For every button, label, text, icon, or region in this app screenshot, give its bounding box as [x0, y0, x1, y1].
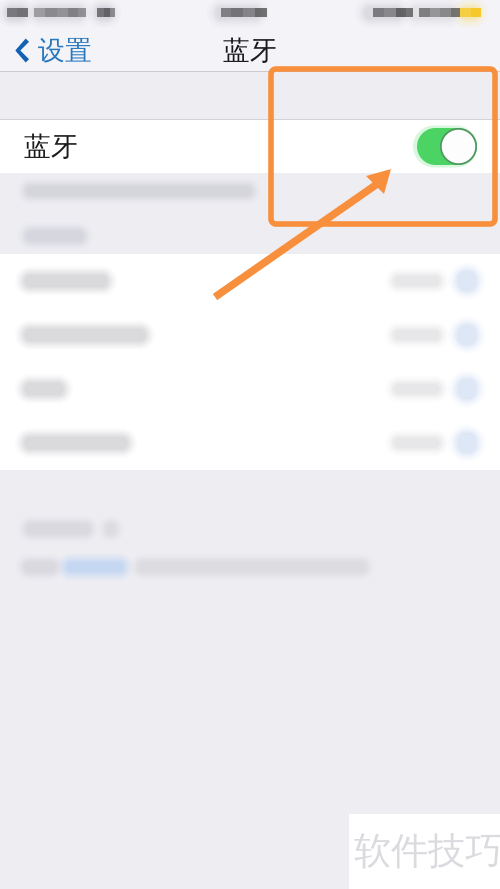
button[interactable] [0, 362, 500, 416]
button[interactable] [0, 308, 500, 362]
staticText: 设置 [38, 34, 92, 67]
staticText: 软件技巧 [354, 828, 500, 874]
button[interactable]: 设置 [0, 30, 102, 71]
staticText: 蓝牙 [24, 130, 78, 163]
staticText: 蓝牙 [223, 34, 277, 67]
button[interactable] [0, 416, 500, 470]
button[interactable]: 蓝牙 [0, 120, 500, 173]
button[interactable] [0, 254, 500, 308]
